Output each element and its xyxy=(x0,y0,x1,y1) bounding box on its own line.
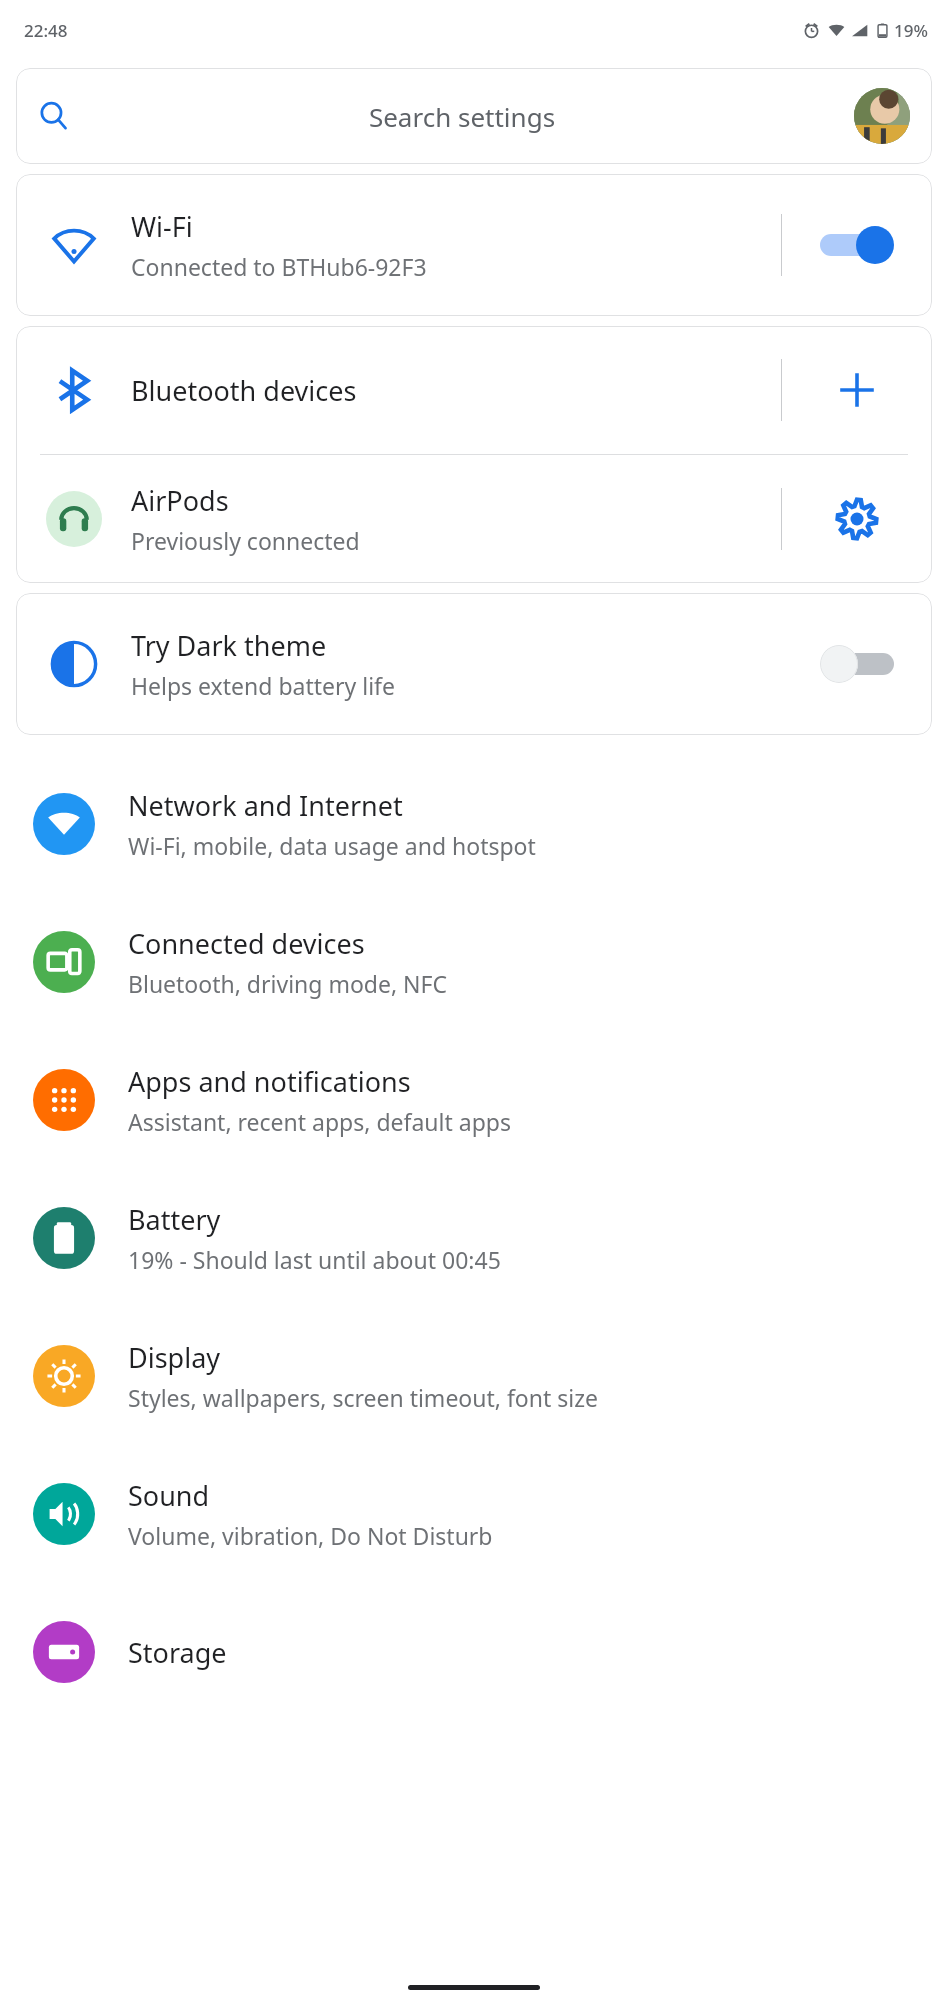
button[interactable]: Battery xyxy=(0,1169,948,1307)
staticText: Bluetooth devices xyxy=(131,372,781,409)
staticText: Battery xyxy=(128,1201,221,1238)
button[interactable]: Add device xyxy=(782,326,932,454)
button[interactable]: Display xyxy=(0,1307,948,1445)
staticText: Previously connected xyxy=(131,525,360,556)
staticText: AirPods xyxy=(131,482,229,519)
button[interactable]: Bluetooth devices xyxy=(16,326,932,454)
staticText: Search settings xyxy=(70,99,854,134)
staticText: Wi-Fi, mobile, data usage and hotspot xyxy=(128,830,536,861)
button[interactable]: Account xyxy=(854,88,910,144)
staticText: Bluetooth, driving mode, NFC xyxy=(128,968,448,999)
staticText: 19% - Should last until about 00:45 xyxy=(128,1244,501,1275)
button[interactable]: AirPods xyxy=(16,455,932,583)
button[interactable]: Sound xyxy=(0,1445,948,1583)
staticText: 19% xyxy=(894,19,928,42)
staticText: Display xyxy=(128,1339,221,1376)
staticText: Styles, wallpapers, screen timeout, font… xyxy=(128,1382,598,1413)
staticText: Assistant, recent apps, default apps xyxy=(128,1106,511,1137)
button[interactable]: Dark theme toggle xyxy=(782,593,932,735)
staticText: Sound xyxy=(128,1477,210,1514)
staticText: Connected devices xyxy=(128,925,365,962)
staticText: Helps extend battery life xyxy=(131,670,395,701)
button[interactable]: Connected devices xyxy=(0,893,948,1031)
staticText: 22:48 xyxy=(24,19,68,42)
button[interactable]: Search settings xyxy=(16,68,932,164)
button[interactable]: Wi-Fi xyxy=(16,174,932,316)
staticText: Connected to BTHub6-92F3 xyxy=(131,251,427,282)
staticText: Apps and notifications xyxy=(128,1063,411,1100)
staticText: Network and Internet xyxy=(128,787,403,824)
staticText: Storage xyxy=(128,1634,227,1671)
button[interactable]: Wi-Fi toggle xyxy=(782,174,932,316)
staticText: Wi-Fi xyxy=(131,208,193,245)
button[interactable]: AirPods settings xyxy=(782,455,932,583)
button[interactable]: Storage xyxy=(0,1583,948,1721)
button[interactable]: Try Dark theme xyxy=(16,593,932,735)
staticText: Volume, vibration, Do Not Disturb xyxy=(128,1520,493,1551)
button[interactable]: Apps and notifications xyxy=(0,1031,948,1169)
staticText: Try Dark theme xyxy=(131,627,327,664)
button[interactable]: Network and Internet xyxy=(0,755,948,893)
